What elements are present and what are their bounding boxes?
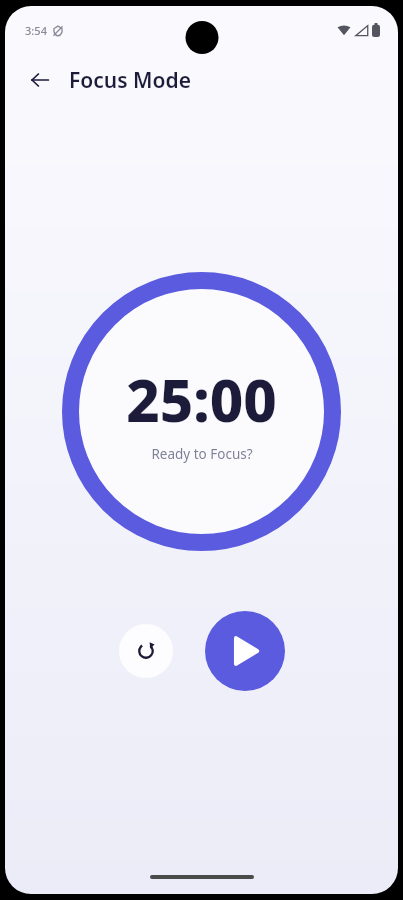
button[interactable]: Reset timer bbox=[119, 624, 173, 678]
button[interactable]: Back bbox=[19, 59, 61, 101]
staticText: 3:54 bbox=[25, 23, 47, 38]
button[interactable]: Start timer bbox=[205, 611, 285, 691]
staticText: 25:00 bbox=[126, 360, 277, 439]
staticText: Focus Mode bbox=[69, 66, 191, 95]
staticText: Ready to Focus? bbox=[151, 445, 253, 463]
